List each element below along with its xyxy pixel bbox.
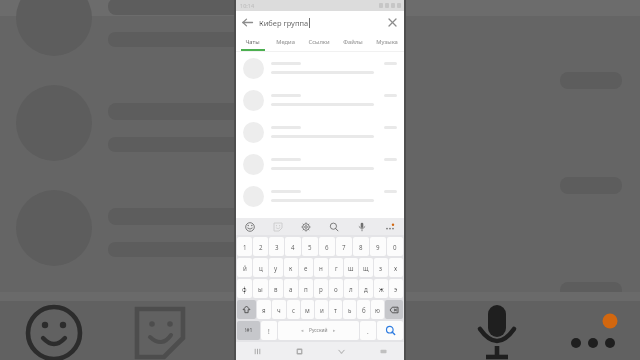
staticText: к bbox=[289, 264, 293, 272]
button[interactable]: п bbox=[299, 279, 313, 298]
staticText: 9 bbox=[376, 243, 380, 251]
button[interactable]: Search bbox=[377, 321, 403, 340]
button[interactable]: э bbox=[389, 279, 403, 298]
staticText: 4 bbox=[291, 243, 295, 251]
button[interactable]: р bbox=[314, 279, 328, 298]
button[interactable]: 7 bbox=[336, 237, 352, 256]
staticText: 6 bbox=[325, 243, 329, 251]
staticText: 5 bbox=[308, 243, 312, 251]
staticText: е bbox=[304, 264, 308, 272]
button[interactable]: Ссылки bbox=[302, 34, 336, 49]
button[interactable]: ю bbox=[371, 300, 384, 319]
staticText: Файлы bbox=[343, 38, 363, 46]
button[interactable]: ф bbox=[237, 279, 252, 298]
button[interactable]: Медиа bbox=[269, 34, 302, 49]
staticText: м bbox=[305, 306, 310, 314]
button[interactable]: Back bbox=[236, 11, 259, 34]
button[interactable]: 5 bbox=[302, 237, 318, 256]
button[interactable]: ш bbox=[344, 258, 358, 277]
staticText: б bbox=[362, 306, 366, 314]
staticText: 1 bbox=[243, 243, 247, 251]
button[interactable]: б bbox=[357, 300, 370, 319]
button[interactable]: 6 bbox=[319, 237, 335, 256]
staticText: Русский bbox=[309, 327, 328, 334]
button[interactable]: Hide keyboard bbox=[320, 342, 362, 360]
button[interactable]: н bbox=[314, 258, 328, 277]
button[interactable]: о bbox=[329, 279, 343, 298]
staticText: г bbox=[335, 264, 338, 272]
button[interactable]: ы bbox=[253, 279, 268, 298]
staticText: 8 bbox=[359, 243, 363, 251]
button[interactable]: и bbox=[315, 300, 328, 319]
button[interactable]: !#1 bbox=[237, 321, 260, 340]
button[interactable]: 2 bbox=[253, 237, 268, 256]
staticText: х bbox=[394, 264, 398, 272]
staticText: ж bbox=[379, 285, 384, 293]
button[interactable]: д bbox=[359, 279, 373, 298]
button[interactable]: Shift bbox=[237, 300, 256, 319]
staticText: 0 bbox=[393, 243, 397, 251]
staticText: ◂ bbox=[301, 328, 304, 333]
button[interactable]: More options bbox=[376, 218, 404, 235]
button[interactable]: у bbox=[269, 258, 283, 277]
staticText: п bbox=[304, 285, 308, 293]
staticText: щ bbox=[363, 264, 369, 272]
button[interactable]: щ bbox=[359, 258, 373, 277]
button[interactable]: Stickers bbox=[264, 218, 292, 235]
button[interactable]: л bbox=[344, 279, 358, 298]
button[interactable]: я bbox=[257, 300, 271, 319]
button[interactable]: с bbox=[287, 300, 300, 319]
button[interactable]: е bbox=[299, 258, 313, 277]
button[interactable]: Voice input bbox=[348, 218, 376, 235]
button[interactable]: . bbox=[360, 321, 376, 340]
staticText: д bbox=[364, 285, 368, 293]
button[interactable]: Emoji bbox=[236, 218, 264, 235]
button[interactable]: 9 bbox=[370, 237, 386, 256]
staticText: 3 bbox=[275, 243, 279, 251]
staticText: ы bbox=[258, 285, 263, 293]
button[interactable]: в bbox=[269, 279, 283, 298]
staticText: з bbox=[379, 264, 383, 272]
staticText: л bbox=[349, 285, 353, 293]
button[interactable]: ! bbox=[261, 321, 277, 340]
button[interactable]: 3 bbox=[269, 237, 284, 256]
button[interactable]: Space, Русский bbox=[278, 321, 359, 340]
button[interactable]: GIF bbox=[292, 218, 320, 235]
button[interactable]: Файлы bbox=[336, 34, 370, 49]
button[interactable]: Музыка bbox=[370, 34, 404, 49]
button[interactable]: т bbox=[329, 300, 342, 319]
staticText: н bbox=[319, 264, 323, 272]
button[interactable]: х bbox=[389, 258, 403, 277]
button[interactable]: 8 bbox=[353, 237, 369, 256]
button[interactable]: Clear bbox=[381, 11, 404, 34]
button[interactable]: а bbox=[284, 279, 298, 298]
staticText: в bbox=[274, 285, 278, 293]
button[interactable]: з bbox=[374, 258, 388, 277]
button[interactable]: к bbox=[284, 258, 298, 277]
staticText: у bbox=[274, 264, 278, 272]
staticText: й bbox=[243, 264, 247, 272]
button[interactable]: Recents bbox=[236, 342, 278, 360]
button[interactable]: ж bbox=[374, 279, 388, 298]
staticText: ! bbox=[268, 327, 270, 335]
button[interactable]: Change keyboard bbox=[362, 342, 404, 360]
button[interactable]: Чаты bbox=[236, 34, 269, 49]
button[interactable]: м bbox=[301, 300, 314, 319]
button[interactable]: ц bbox=[253, 258, 268, 277]
staticText: ш bbox=[348, 264, 354, 272]
staticText: э bbox=[394, 285, 398, 293]
button[interactable]: 0 bbox=[387, 237, 403, 256]
button[interactable]: 1 bbox=[237, 237, 252, 256]
button[interactable]: г bbox=[329, 258, 343, 277]
button[interactable]: Backspace bbox=[385, 300, 403, 319]
button[interactable]: ь bbox=[343, 300, 356, 319]
button[interactable]: 4 bbox=[285, 237, 301, 256]
staticText: ▸ bbox=[333, 328, 336, 333]
staticText: . bbox=[367, 327, 369, 335]
button[interactable]: ч bbox=[272, 300, 286, 319]
button[interactable]: й bbox=[237, 258, 252, 277]
staticText: я bbox=[262, 306, 266, 314]
button[interactable]: Search bbox=[320, 218, 348, 235]
button[interactable]: Home bbox=[278, 342, 320, 360]
staticText: ь bbox=[348, 306, 352, 314]
